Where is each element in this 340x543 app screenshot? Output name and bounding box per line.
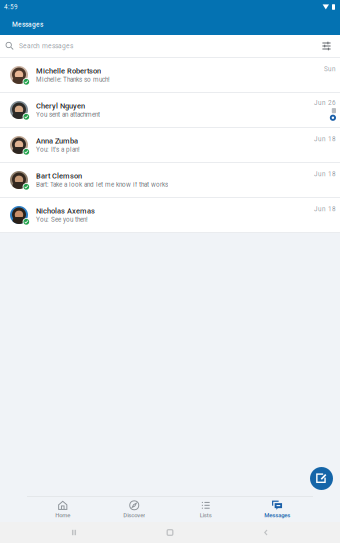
button[interactable]: Michelle Robertson: [0, 58, 340, 93]
button[interactable]: Back: [244, 522, 288, 542]
button[interactable]: Anna Zumba: [0, 128, 340, 163]
staticText: Anna Zumba: [36, 137, 78, 145]
staticText: You: See you then!: [36, 216, 88, 223]
staticText: Messages: [264, 512, 290, 519]
staticText: Michelle: Thanks so much!: [36, 76, 110, 83]
staticText: Lists: [200, 512, 212, 519]
staticText: Discover: [123, 512, 145, 519]
button[interactable]: Nicholas Axemas: [0, 198, 340, 233]
staticText: Jun 26: [314, 99, 336, 107]
staticText: Messages: [12, 21, 43, 28]
button[interactable]: Recents: [52, 522, 96, 542]
staticText: Jun 18: [314, 170, 336, 178]
staticText: Search messages: [19, 42, 73, 50]
button[interactable]: Cheryl Nguyen: [0, 93, 340, 128]
staticText: Michelle Robertson: [36, 67, 101, 75]
staticText: Bart Clemson: [36, 172, 82, 180]
button[interactable]: Home: [27, 497, 98, 521]
staticText: You sent an attachment: [36, 111, 100, 118]
button[interactable]: Home: [148, 522, 192, 542]
staticText: Jun 18: [314, 135, 336, 143]
staticText: Bart: Take a look and let me know if tha…: [36, 181, 168, 188]
staticText: Cheryl Nguyen: [36, 102, 85, 110]
button[interactable]: Messages: [241, 497, 313, 521]
staticText: Nicholas Axemas: [36, 207, 95, 215]
button[interactable]: Discover: [98, 497, 170, 521]
staticText: You: It's a plan!: [36, 146, 80, 153]
staticText: Jun 18: [314, 205, 336, 213]
staticText: 4:59: [4, 3, 18, 11]
button[interactable]: Bart Clemson: [0, 163, 340, 198]
button[interactable]: Start chat: [310, 467, 333, 490]
staticText: Sun: [324, 65, 336, 73]
button[interactable]: Search messages: [0, 35, 340, 57]
staticText: Home: [55, 512, 70, 519]
button[interactable]: Lists: [170, 497, 241, 521]
